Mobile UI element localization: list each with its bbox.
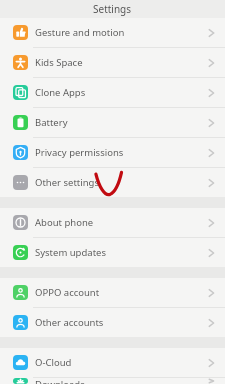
staticText: Downloads [35,378,208,384]
staticText: System updates [35,246,208,259]
staticText: Other settings [35,176,208,189]
other: Open Downloads [208,378,215,384]
button[interactable]: Clone Apps [0,78,225,107]
staticText: Privacy permissions [35,146,208,159]
button[interactable]: Gesture and motion [0,18,225,47]
button[interactable]: Privacy permissions [0,138,225,167]
button[interactable]: OPPO account [0,278,225,307]
other: Open OPPO account [208,287,215,299]
button[interactable]: O-Cloud [0,348,225,377]
staticText: Other accounts [35,316,208,329]
button[interactable]: System updates [0,238,225,267]
staticText: Battery [35,116,208,129]
staticText: O-Cloud [35,356,208,369]
other: Open System updates [208,247,215,259]
other: Open Other settings [208,177,215,189]
button[interactable]: Downloads [0,378,225,384]
other: Open Kids Space [208,57,215,69]
other: Open Battery [208,117,215,129]
other: Open O-Cloud [208,357,215,369]
other: Open Clone Apps [208,87,215,99]
button[interactable]: Other settings [0,168,225,197]
button[interactable]: About phone [0,208,225,237]
other: Open Privacy permissions [208,147,215,159]
staticText: About phone [35,216,208,229]
other: Open About phone [208,217,215,229]
staticText: Kids Space [35,56,208,69]
staticText: OPPO account [35,286,208,299]
other: Open Other accounts [208,317,215,329]
staticText: Gesture and motion [35,26,208,39]
button[interactable]: Battery [0,108,225,137]
button[interactable]: Kids Space [0,48,225,77]
button[interactable]: Other accounts [0,308,225,337]
other: Open Gesture and motion [208,27,215,39]
staticText: Settings [93,2,132,16]
staticText: Clone Apps [35,86,208,99]
